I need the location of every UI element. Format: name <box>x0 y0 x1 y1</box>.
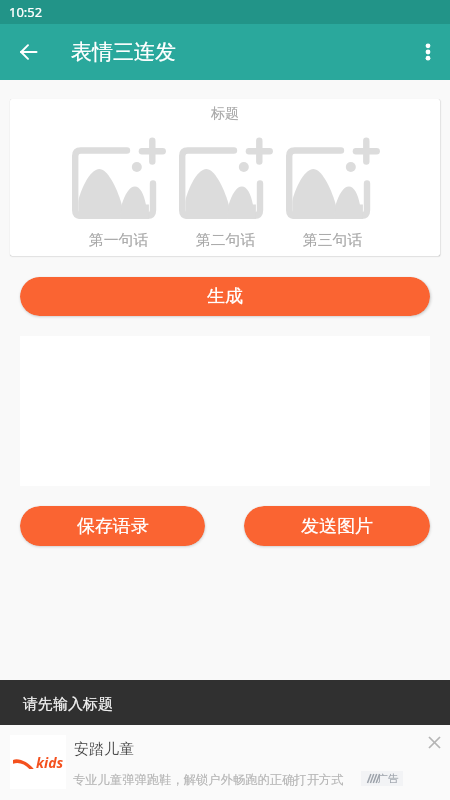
staticText: 10:52 <box>9 3 43 21</box>
button[interactable]: Add image 第二句话 <box>179 137 272 219</box>
button[interactable]: Close ad <box>422 730 446 754</box>
staticText: 专业儿童弹弹跑鞋，解锁户外畅跑的正确打开方式 <box>73 772 344 787</box>
button[interactable]: Add image 第三句话 <box>286 137 379 219</box>
button[interactable]: Add image 第一句话 <box>72 137 165 219</box>
staticText: 安踏儿童 <box>74 740 134 759</box>
staticText: 表情三连发 <box>71 39 176 65</box>
staticText: 第一句话 <box>89 231 149 250</box>
staticText: 广告 <box>378 772 398 785</box>
button[interactable]: 保存语录 <box>20 506 205 546</box>
button[interactable]: 发送图片 <box>244 506 430 546</box>
staticText: 保存语录 <box>77 515 149 538</box>
staticText: 生成 <box>207 285 243 308</box>
button[interactable]: More options <box>406 24 450 80</box>
staticText: 请先输入标题 <box>23 695 113 714</box>
button[interactable]: 生成 <box>20 277 430 316</box>
staticText: 第三句话 <box>303 231 363 250</box>
staticText: 标题 <box>10 105 440 123</box>
staticText: kids <box>36 753 64 772</box>
staticText: 第二句话 <box>196 231 256 250</box>
staticText: 发送图片 <box>301 515 373 538</box>
button[interactable]: Back <box>0 24 56 80</box>
